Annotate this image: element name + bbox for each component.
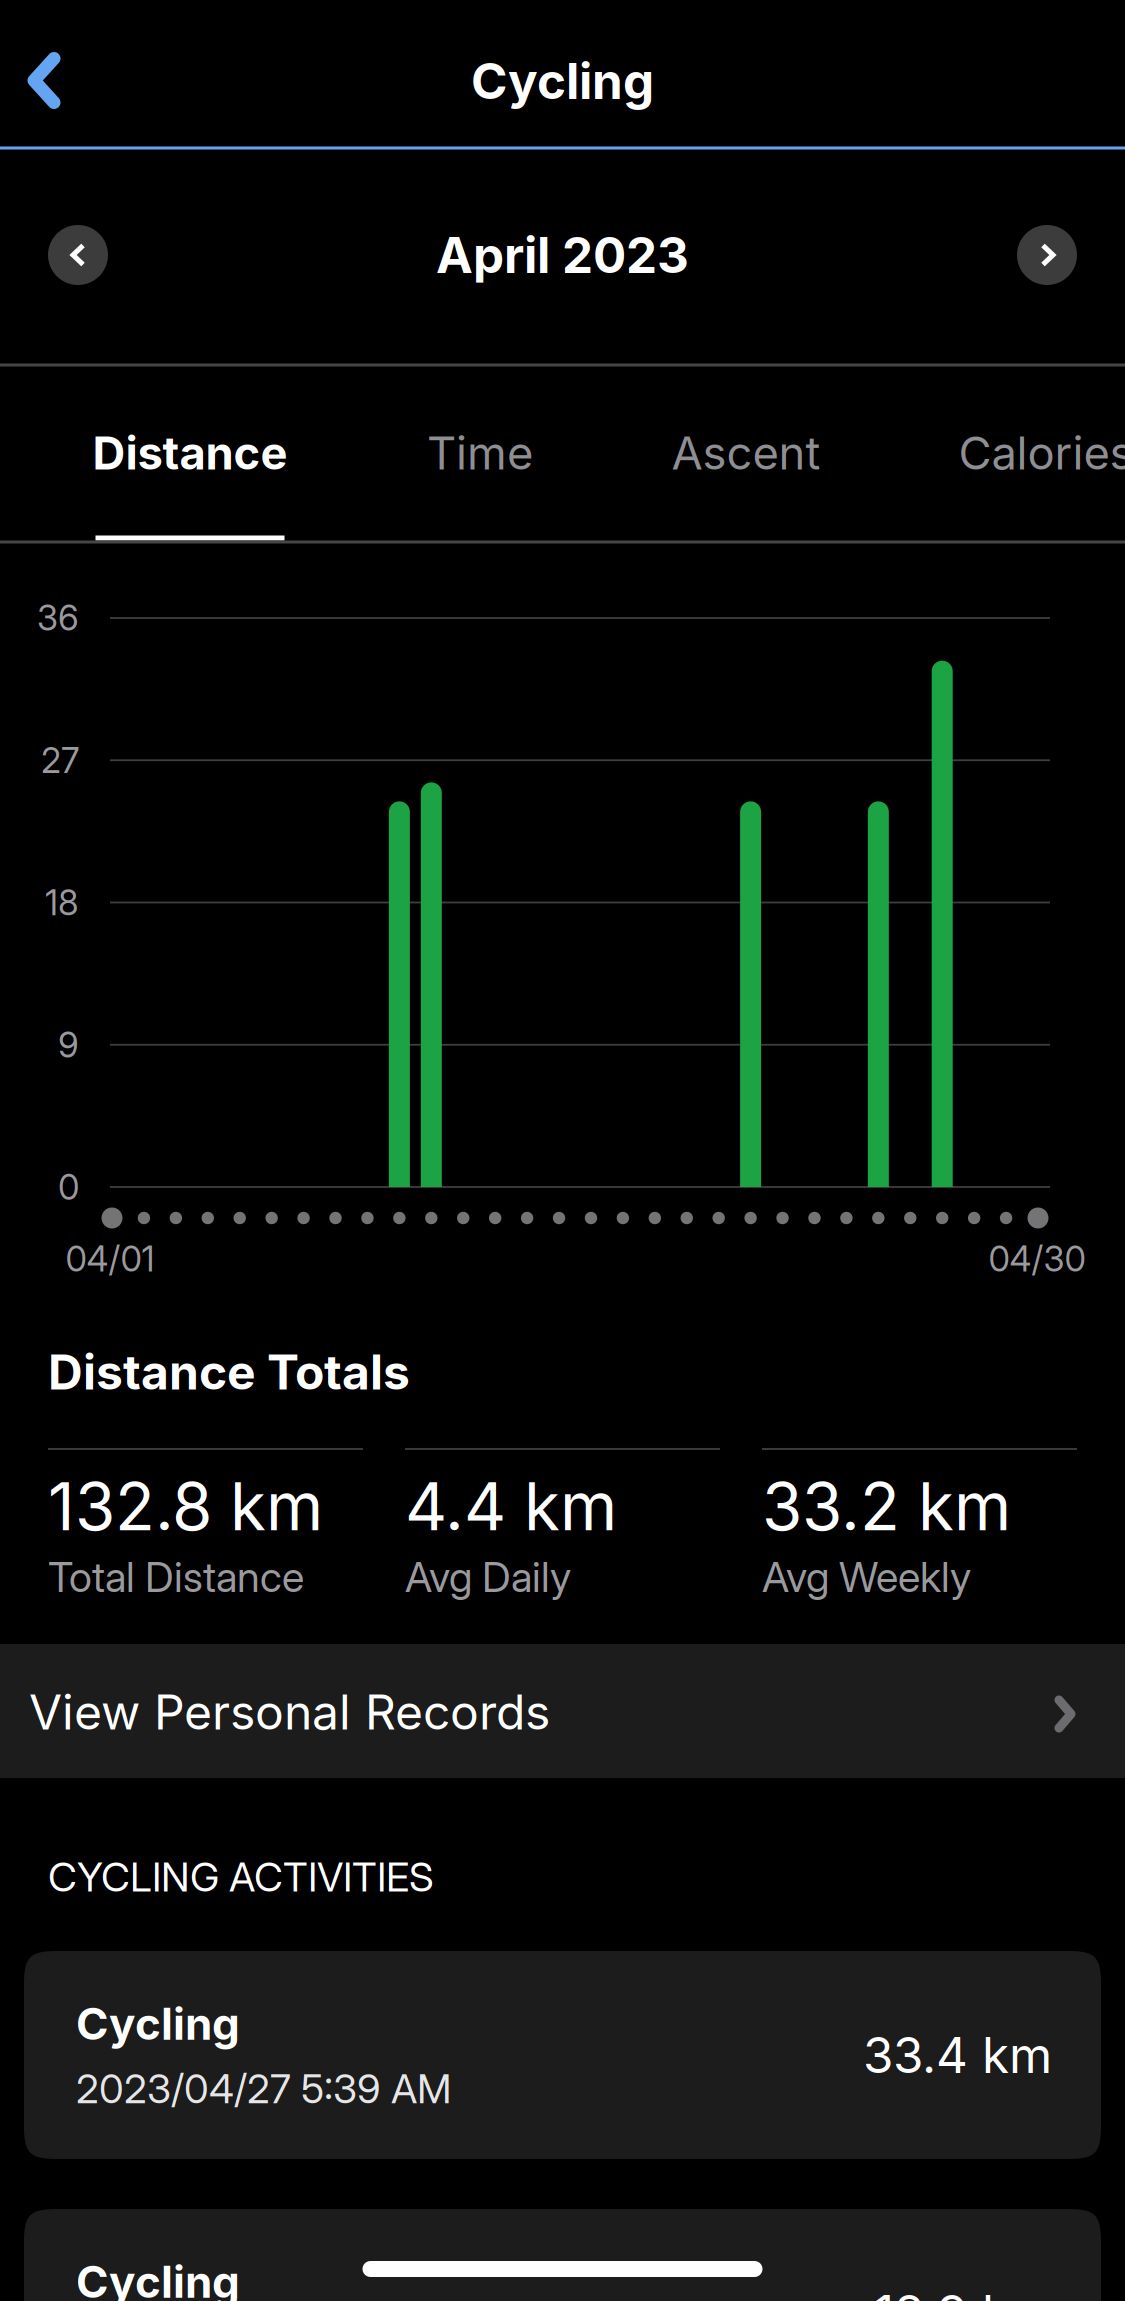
button[interactable]: Cycling xyxy=(24,1951,1101,2159)
button[interactable]: Next month xyxy=(1017,225,1077,285)
button[interactable]: Time xyxy=(347,367,612,543)
staticText: 33.2 km xyxy=(762,1467,1011,1546)
staticText: 132.8 km xyxy=(48,1467,323,1546)
staticText: 04/30 xyxy=(988,1238,1085,1280)
staticText: April 2023 xyxy=(436,225,689,285)
staticText: Time xyxy=(427,426,533,480)
staticText: Total Distance xyxy=(48,1552,304,1602)
staticText: Calories xyxy=(958,426,1125,480)
button[interactable]: Distance xyxy=(47,367,332,543)
button[interactable]: View Personal Records xyxy=(0,1644,1125,1778)
button[interactable]: Ascent xyxy=(613,367,878,543)
staticText: Avg Daily xyxy=(405,1552,571,1602)
button[interactable]: Previous month xyxy=(48,225,108,285)
staticText: Distance Totals xyxy=(48,1343,410,1401)
staticText: Avg Weekly xyxy=(762,1552,971,1602)
staticText: Distance xyxy=(92,426,287,480)
staticText: View Personal Records xyxy=(29,1683,550,1741)
staticText: Cycling xyxy=(471,51,654,111)
staticText: 18 xyxy=(45,882,79,923)
staticText: Ascent xyxy=(671,426,820,480)
staticText: 2023/04/27 5:39 AM xyxy=(76,2064,451,2113)
staticText: Cycling xyxy=(76,2255,240,2301)
button[interactable]: Back xyxy=(0,0,130,147)
button[interactable]: Calories xyxy=(913,367,1125,543)
staticText: Cycling xyxy=(76,1997,240,2050)
staticText: 4.4 km xyxy=(405,1467,617,1546)
button[interactable]: Cycling xyxy=(24,2209,1101,2301)
staticText: 33.4 km xyxy=(863,2025,1052,2085)
staticText: 04/01 xyxy=(65,1238,154,1280)
staticText: 0 xyxy=(58,1166,79,1208)
staticText: 27 xyxy=(41,739,79,781)
staticText: 9 xyxy=(58,1024,79,1066)
staticText: 18.9 km xyxy=(874,2283,1052,2301)
staticText: 36 xyxy=(37,597,79,639)
staticText: CYCLING ACTIVITIES xyxy=(48,1853,434,1901)
